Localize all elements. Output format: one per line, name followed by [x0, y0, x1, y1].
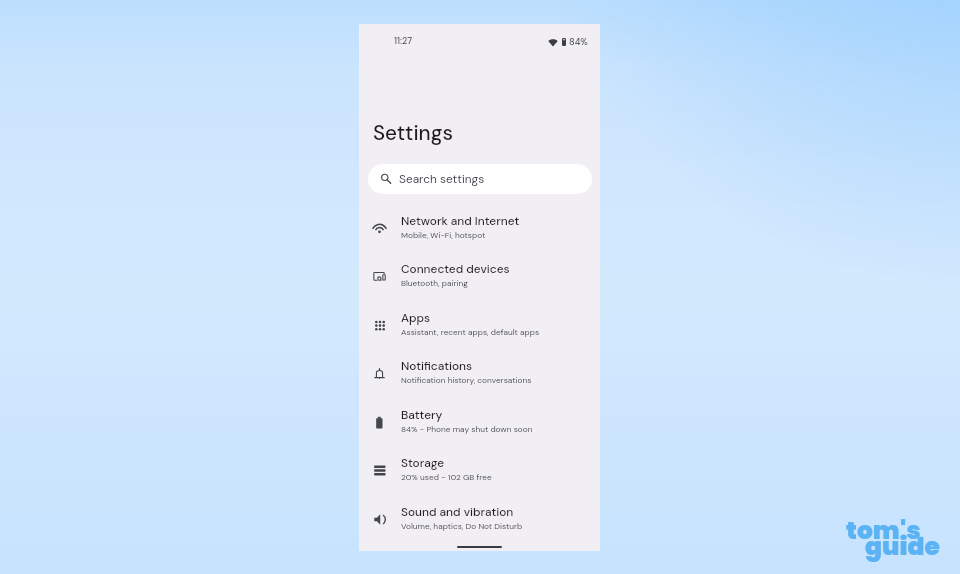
staticText: 84% - Phone may shut down soon	[401, 424, 533, 435]
button[interactable]: Battery	[359, 395, 600, 444]
button[interactable]: Search settings	[368, 164, 592, 194]
staticText: Volume, haptics, Do Not Disturb	[401, 521, 523, 532]
staticText: Notification history, conversations	[401, 375, 532, 386]
staticText: tom's	[846, 513, 921, 548]
staticText: Apps	[401, 310, 431, 325]
staticText: Bluetooth, pairing	[401, 278, 468, 289]
button[interactable]: Sound and vibration	[359, 492, 600, 541]
button[interactable]: Storage	[359, 443, 600, 492]
button[interactable]: Connected devices	[359, 249, 600, 298]
staticText: Settings	[373, 120, 453, 147]
staticText: guide	[865, 529, 940, 564]
staticText: Sound and vibration	[401, 504, 514, 519]
staticText: Notifications	[401, 358, 473, 373]
staticText: Network and Internet	[401, 213, 520, 228]
button[interactable]: Network and Internet	[359, 201, 600, 250]
staticText: 84%	[569, 36, 588, 48]
staticText: Storage	[401, 455, 445, 470]
button[interactable]: Apps	[359, 298, 600, 347]
staticText: Search settings	[399, 171, 485, 186]
staticText: 20% used - 102 GB free	[401, 472, 492, 483]
staticText: 11:27	[394, 35, 413, 47]
staticText: Connected devices	[401, 261, 510, 276]
staticText: Mobile, Wi-Fi, hotspot	[401, 230, 486, 241]
button[interactable]: Notifications	[359, 346, 600, 395]
staticText: Battery	[401, 407, 443, 422]
staticText: Assistant, recent apps, default apps	[401, 327, 540, 338]
